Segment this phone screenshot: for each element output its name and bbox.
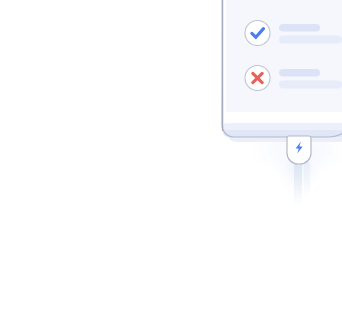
- button[interactable]: Transaction status card: [222, 0, 342, 137]
- button[interactable]: Charging: [286, 136, 312, 165]
